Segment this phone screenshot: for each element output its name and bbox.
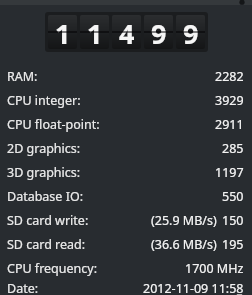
- button[interactable]: CPU frequency:: [0, 256, 252, 280]
- staticText: 1197: [215, 164, 244, 181]
- staticText: CPU integer:: [7, 92, 81, 109]
- staticText: 2282: [215, 68, 244, 85]
- button[interactable]: 2D graphics:: [0, 136, 252, 160]
- staticText: 1: [87, 15, 103, 49]
- staticText: 2D graphics:: [7, 140, 81, 157]
- staticText: (25.9 MB/s): [151, 212, 217, 229]
- button[interactable]: Database IO:: [0, 184, 252, 208]
- staticText: SD card read:: [7, 236, 86, 253]
- staticText: SD card write:: [7, 212, 89, 229]
- staticText: 9: [183, 15, 199, 49]
- button[interactable]: CPU float-point:: [0, 112, 252, 136]
- staticText: 1: [55, 15, 71, 49]
- staticText: 4: [119, 15, 135, 49]
- staticText: (36.6 MB/s): [151, 236, 217, 253]
- button[interactable]: 3D graphics:: [0, 160, 252, 184]
- button[interactable]: CPU integer:: [0, 88, 252, 112]
- staticText: Date:: [7, 280, 39, 295]
- staticText: 9: [151, 15, 167, 49]
- staticText: CPU frequency:: [7, 260, 98, 277]
- staticText: 195: [222, 236, 244, 253]
- staticText: 285: [222, 140, 244, 157]
- staticText: 2012-11-09 11:58: [143, 280, 244, 295]
- button[interactable]: SD card read:: [0, 232, 252, 256]
- staticText: CPU float-point:: [7, 116, 100, 133]
- staticText: Database IO:: [7, 188, 84, 205]
- button[interactable]: Date:: [0, 280, 252, 295]
- staticText: 550: [222, 188, 244, 205]
- staticText: 150: [222, 212, 244, 229]
- staticText: 3D graphics:: [7, 164, 81, 181]
- button[interactable]: SD card write:: [0, 208, 252, 232]
- staticText: 1700 MHz: [185, 260, 244, 277]
- button[interactable]: RAM:: [0, 64, 252, 88]
- staticText: RAM:: [7, 68, 38, 85]
- staticText: 2911: [215, 116, 244, 133]
- staticText: 3929: [215, 92, 244, 109]
